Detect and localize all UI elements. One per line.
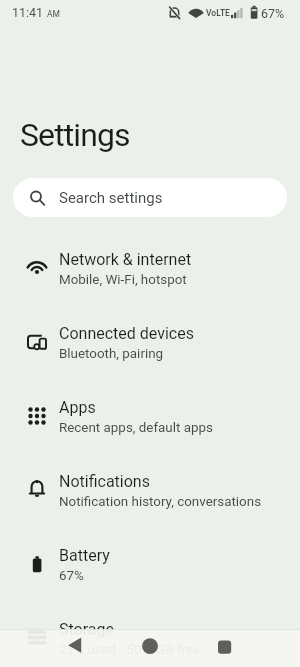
staticText: 67% (261, 6, 285, 21)
button[interactable]: Apps (0, 379, 300, 453)
staticText: Connected devices (59, 324, 194, 343)
staticText: Mobile, Wi-Fi, hotspot (59, 272, 187, 288)
staticText: Notifications (59, 472, 150, 491)
button[interactable]: Notifications (0, 453, 300, 527)
staticText: Recent apps, default apps (59, 420, 213, 436)
staticText: AM (47, 9, 60, 19)
staticText: Network & internet (59, 250, 192, 269)
staticText: 11:41 (12, 5, 44, 20)
staticText: Apps (59, 398, 96, 417)
button[interactable]: Connected devices (0, 305, 300, 379)
button[interactable]: Search settings (13, 178, 287, 217)
staticText: Settings (20, 116, 130, 154)
button[interactable] (209, 630, 241, 662)
button[interactable] (59, 630, 91, 662)
staticText: Notification history, conversations (59, 494, 262, 510)
button[interactable]: Storage (0, 601, 300, 667)
staticText: Bluetooth, pairing (59, 346, 164, 362)
staticText: Storage (59, 620, 114, 639)
button[interactable] (134, 630, 166, 662)
staticText: Search settings (59, 189, 163, 207)
button[interactable]: Network & internet (0, 231, 300, 305)
button[interactable]: Battery (0, 527, 300, 601)
staticText: 67% (59, 568, 84, 584)
staticText: Battery (59, 546, 110, 565)
staticText: VoLTE (206, 8, 230, 18)
staticText: 21% used - 50.0 GB free (59, 642, 200, 658)
